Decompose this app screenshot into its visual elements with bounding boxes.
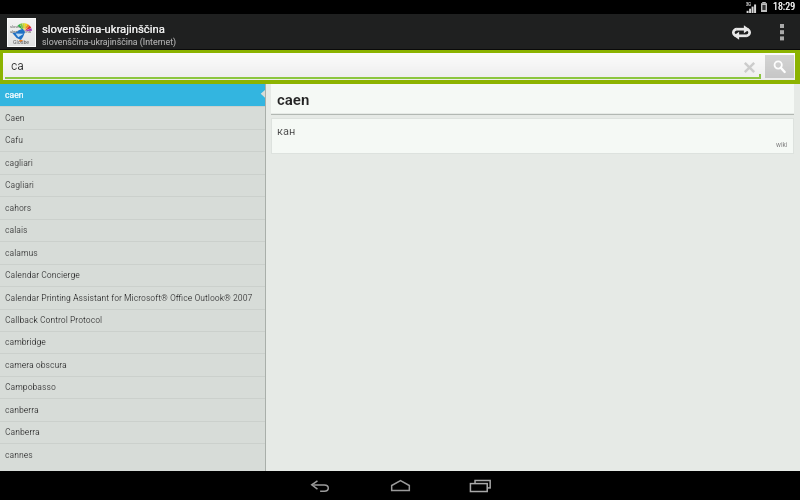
button[interactable]: ca xyxy=(3,53,765,80)
staticText: slovenščina-ukrajinščina xyxy=(42,23,165,36)
button[interactable]: camera obscura xyxy=(0,353,265,376)
staticText: Cagliari xyxy=(5,180,34,190)
button[interactable]: Search xyxy=(765,55,794,78)
staticText: ca xyxy=(11,59,24,73)
button[interactable]: Calendar Concierge xyxy=(0,264,265,286)
button[interactable]: Cagliari xyxy=(0,174,265,196)
button[interactable]: Back xyxy=(280,471,360,500)
staticText: Campobasso xyxy=(5,382,56,392)
staticText: calamus xyxy=(5,248,38,258)
button[interactable]: caen xyxy=(0,84,265,106)
button[interactable]: Cafu xyxy=(0,129,265,151)
staticText: canberra xyxy=(5,405,39,415)
staticText: wiki xyxy=(776,141,788,149)
button[interactable]: cannes xyxy=(0,443,265,466)
button[interactable]: Home xyxy=(360,471,440,500)
button[interactable]: calamus xyxy=(0,241,265,264)
staticText: slovenščina-ukrajinščina (Internet) xyxy=(42,37,177,47)
staticText: caen xyxy=(277,91,310,109)
button[interactable]: Open dictionary home xyxy=(7,18,36,47)
button[interactable]: Recent apps xyxy=(440,471,520,500)
button[interactable]: cagliari xyxy=(0,151,265,174)
staticText: cahors xyxy=(5,203,32,213)
button[interactable]: Campobasso xyxy=(0,376,265,398)
staticText: Caen xyxy=(5,113,25,123)
button[interactable]: Clear query xyxy=(739,57,759,77)
button[interactable]: Canberra xyxy=(0,421,265,443)
staticText: camera obscura xyxy=(5,360,67,370)
staticText: caen xyxy=(5,90,24,100)
staticText: cambridge xyxy=(5,337,46,347)
staticText: Callback Control Protocol xyxy=(5,315,103,325)
staticText: 3G xyxy=(746,2,751,7)
staticText: cannes xyxy=(5,450,33,460)
button[interactable]: кан xyxy=(272,119,793,153)
staticText: Glosbe xyxy=(13,39,30,45)
button[interactable]: cahors xyxy=(0,196,265,219)
staticText: Cafu xyxy=(5,135,23,145)
staticText: 18:29 xyxy=(773,1,796,13)
button[interactable]: Callback Control Protocol xyxy=(0,309,265,331)
staticText: Canberra xyxy=(5,427,40,437)
staticText: slovenščina ukrajinščina xyxy=(10,24,31,34)
staticText: Calendar Printing Assistant for Microsof… xyxy=(5,293,253,303)
staticText: calais xyxy=(5,225,28,235)
button[interactable]: Caen xyxy=(0,106,265,129)
staticText: Calendar Concierge xyxy=(5,270,80,280)
button[interactable]: calais xyxy=(0,219,265,241)
staticText: кан xyxy=(277,125,296,138)
button[interactable]: More options xyxy=(763,14,800,50)
button[interactable]: canberra xyxy=(0,398,265,421)
staticText: cagliari xyxy=(5,158,33,168)
button[interactable]: Calendar Printing Assistant for Microsof… xyxy=(0,286,265,309)
button[interactable]: Swap languages xyxy=(719,14,763,50)
button[interactable]: cambridge xyxy=(0,331,265,353)
